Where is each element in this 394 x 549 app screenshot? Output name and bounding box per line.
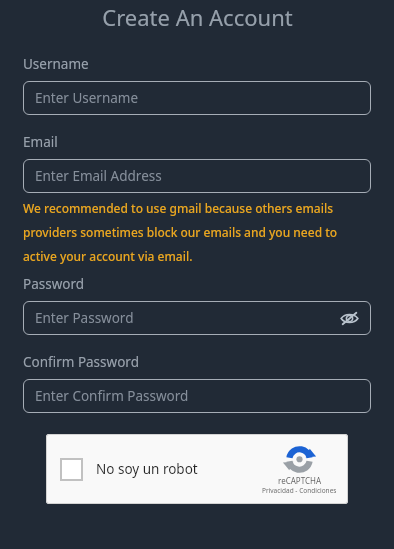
staticText: Enter Confirm Password <box>35 387 361 405</box>
staticText: Enter Email Address <box>35 167 361 185</box>
staticText: Enter Username <box>35 89 361 107</box>
button[interactable]: Enter Confirm Password <box>23 379 371 413</box>
staticText: We recommended to use gmail because othe… <box>23 200 371 264</box>
staticText: Enter Password <box>35 309 337 327</box>
button[interactable]: Toggle password visibility <box>337 306 361 330</box>
button[interactable]: No soy un robot checkbox <box>60 458 83 481</box>
staticText: Confirm Password <box>23 353 139 371</box>
button[interactable]: Enter Username <box>23 81 371 115</box>
button[interactable]: Enter Email Address <box>23 159 371 193</box>
button[interactable]: No soy un robot checkbox <box>46 434 348 504</box>
staticText: Password <box>23 275 85 293</box>
staticText: No soy un robot <box>96 460 198 478</box>
staticText: Create An Account <box>102 2 293 32</box>
staticText: reCAPTCHA <box>278 475 322 486</box>
button[interactable]: Enter Password <box>23 301 371 335</box>
staticText: Privacidad - Condiciones <box>262 486 337 495</box>
staticText: Username <box>23 55 89 73</box>
staticText: Email <box>23 133 58 151</box>
